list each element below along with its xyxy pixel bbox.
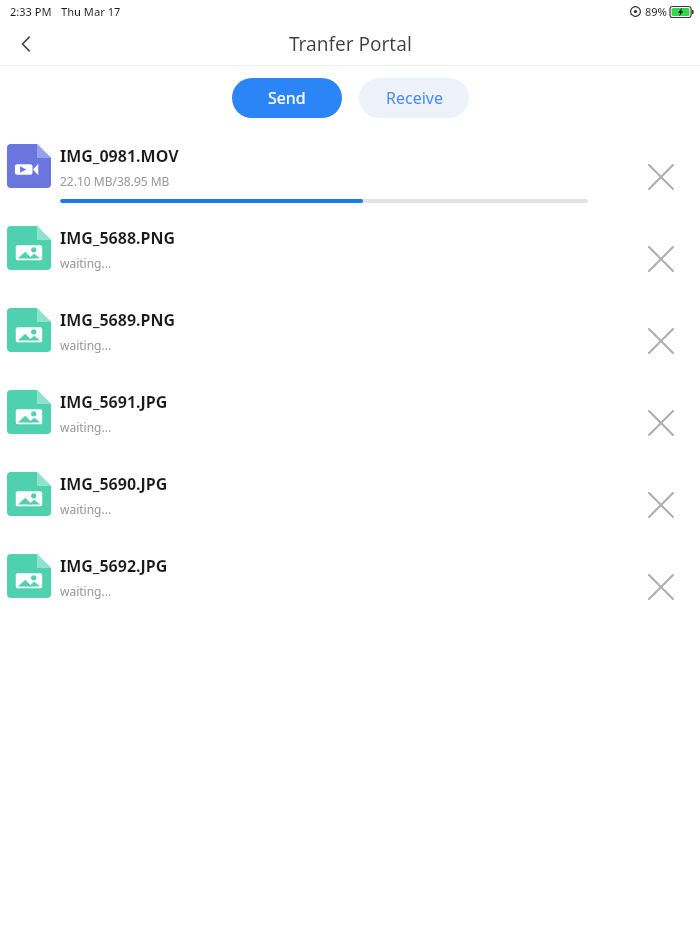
staticText: Tranfer Portal — [289, 31, 412, 57]
button[interactable]: IMG_5692.JPG — [0, 546, 700, 628]
button[interactable]: Remove IMG_5689.PNG — [637, 317, 685, 365]
button[interactable]: Remove IMG_0981.MOV — [637, 153, 685, 201]
staticText: IMG_5691.JPG — [60, 391, 168, 413]
staticText: IMG_5690.JPG — [60, 473, 168, 495]
staticText: IMG_5692.JPG — [60, 555, 168, 577]
staticText: Receive — [386, 87, 443, 109]
button[interactable]: Back — [8, 26, 44, 62]
staticText: waiting... — [60, 501, 112, 517]
button[interactable]: Remove IMG_5691.JPG — [637, 399, 685, 447]
staticText: waiting... — [60, 583, 112, 599]
button[interactable]: IMG_0981.MOV — [0, 136, 700, 218]
staticText: IMG_5688.PNG — [60, 227, 176, 249]
button[interactable]: IMG_5688.PNG — [0, 218, 700, 300]
button[interactable]: IMG_5691.JPG — [0, 382, 700, 464]
staticText: waiting... — [60, 337, 112, 353]
staticText: IMG_5689.PNG — [60, 309, 176, 331]
button[interactable]: Remove IMG_5690.JPG — [637, 481, 685, 529]
staticText: waiting... — [60, 255, 112, 271]
button[interactable]: IMG_5689.PNG — [0, 300, 700, 382]
button[interactable]: Send — [232, 78, 342, 118]
button[interactable]: Remove IMG_5688.PNG — [637, 235, 685, 283]
staticText: Send — [268, 87, 306, 109]
staticText: Thu Mar 17 — [61, 4, 121, 19]
staticText: 2:33 PM — [10, 4, 52, 19]
staticText: waiting... — [60, 419, 112, 435]
staticText: 89% — [645, 4, 667, 19]
button[interactable]: Remove IMG_5692.JPG — [637, 563, 685, 611]
staticText: 22.10 MB/38.95 MB — [60, 173, 170, 189]
staticText: IMG_0981.MOV — [60, 145, 179, 167]
button[interactable]: Receive — [359, 78, 469, 118]
button[interactable]: IMG_5690.JPG — [0, 464, 700, 546]
